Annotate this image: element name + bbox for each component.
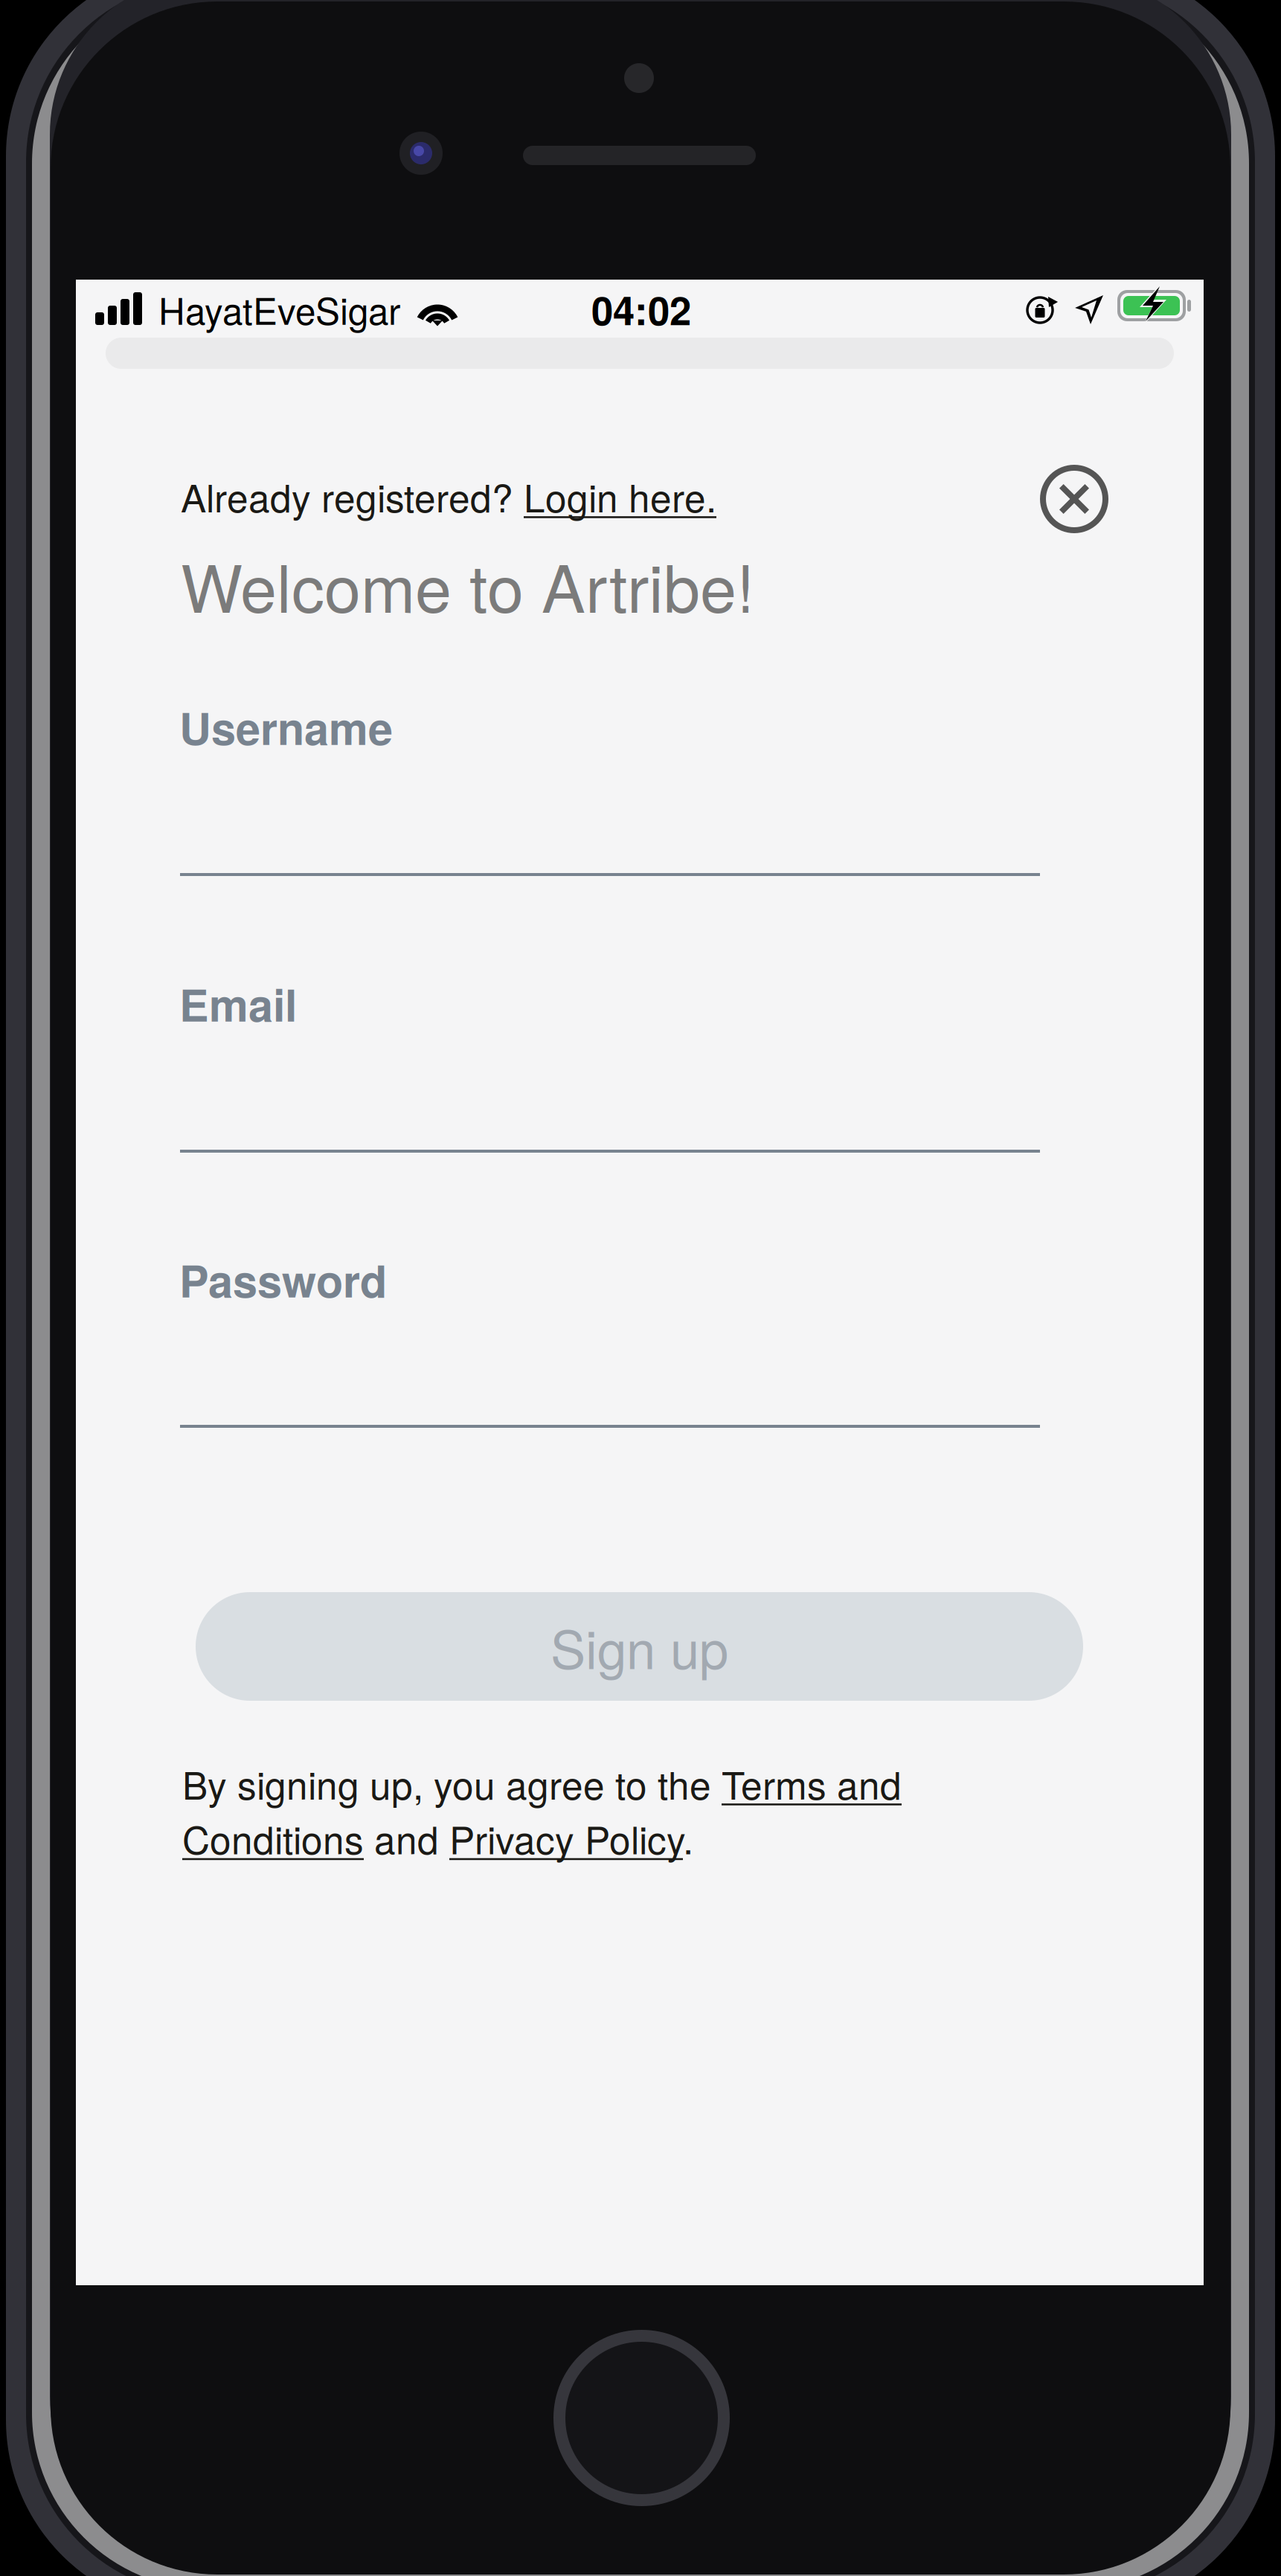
- staticText: Password: [179, 1248, 387, 1311]
- staticText: Sign up: [550, 1609, 728, 1684]
- button[interactable]: Close: [1037, 462, 1111, 536]
- staticText: Already registered? Login here.: [181, 468, 716, 523]
- staticText: 04:02: [591, 281, 691, 337]
- staticText: HayatEveSigar: [158, 283, 400, 335]
- staticText: By signing up, you agree to the Terms an…: [182, 1756, 902, 1865]
- staticText: Welcome to Artribe!: [181, 538, 754, 631]
- button[interactable]: Sign up: [196, 1592, 1083, 1701]
- staticText: Username: [179, 695, 393, 759]
- button[interactable]: Already registered? Login here.: [181, 468, 716, 523]
- staticText: Email: [179, 972, 297, 1035]
